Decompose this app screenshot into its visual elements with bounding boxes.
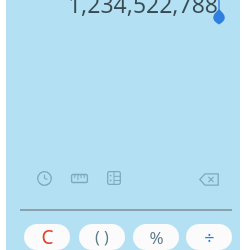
staticText: %	[149, 226, 164, 249]
button[interactable]: Scientific calculator	[102, 166, 126, 190]
other: Water drop indicator	[206, 0, 232, 30]
staticText: ( )	[95, 226, 109, 248]
button[interactable]: ÷	[186, 224, 232, 250]
button[interactable]: Backspace	[196, 166, 222, 192]
button[interactable]: History	[32, 166, 56, 190]
button[interactable]: ( )	[79, 224, 125, 250]
button[interactable]: Unit converter	[67, 166, 91, 190]
staticText: ÷	[204, 225, 215, 250]
button[interactable]: %	[133, 224, 179, 250]
staticText: C	[41, 224, 54, 250]
staticText: 1,234,522,788	[67, 0, 218, 18]
button[interactable]: C	[24, 224, 70, 250]
